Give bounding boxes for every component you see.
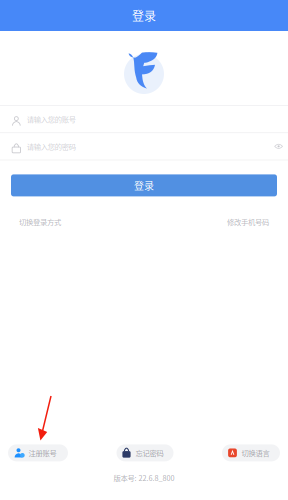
button[interactable]: 切换登录方式 bbox=[19, 216, 61, 227]
button[interactable]: 修改手机号码 bbox=[227, 216, 269, 227]
staticText: 登录 bbox=[132, 7, 156, 24]
staticText: 切换语言 bbox=[241, 448, 269, 458]
staticText: 请输入您的密码 bbox=[27, 141, 76, 152]
staticText: 登录 bbox=[134, 178, 154, 193]
button[interactable]: 忘记密码 bbox=[116, 444, 173, 461]
staticText: 版本号: 22.6.8_800 bbox=[113, 472, 174, 483]
staticText: 修改手机号码 bbox=[227, 216, 269, 227]
button[interactable]: 登录 bbox=[11, 174, 277, 196]
button[interactable]: 切换语言 bbox=[222, 444, 280, 461]
staticText: 切换登录方式 bbox=[19, 216, 61, 227]
button[interactable]: 注册账号 bbox=[8, 444, 68, 461]
button[interactable]: 显示密码 bbox=[270, 140, 283, 153]
staticText: 请输入您的账号 bbox=[27, 114, 76, 124]
staticText: 忘记密码 bbox=[135, 448, 163, 458]
staticText: 注册账号 bbox=[28, 448, 56, 458]
